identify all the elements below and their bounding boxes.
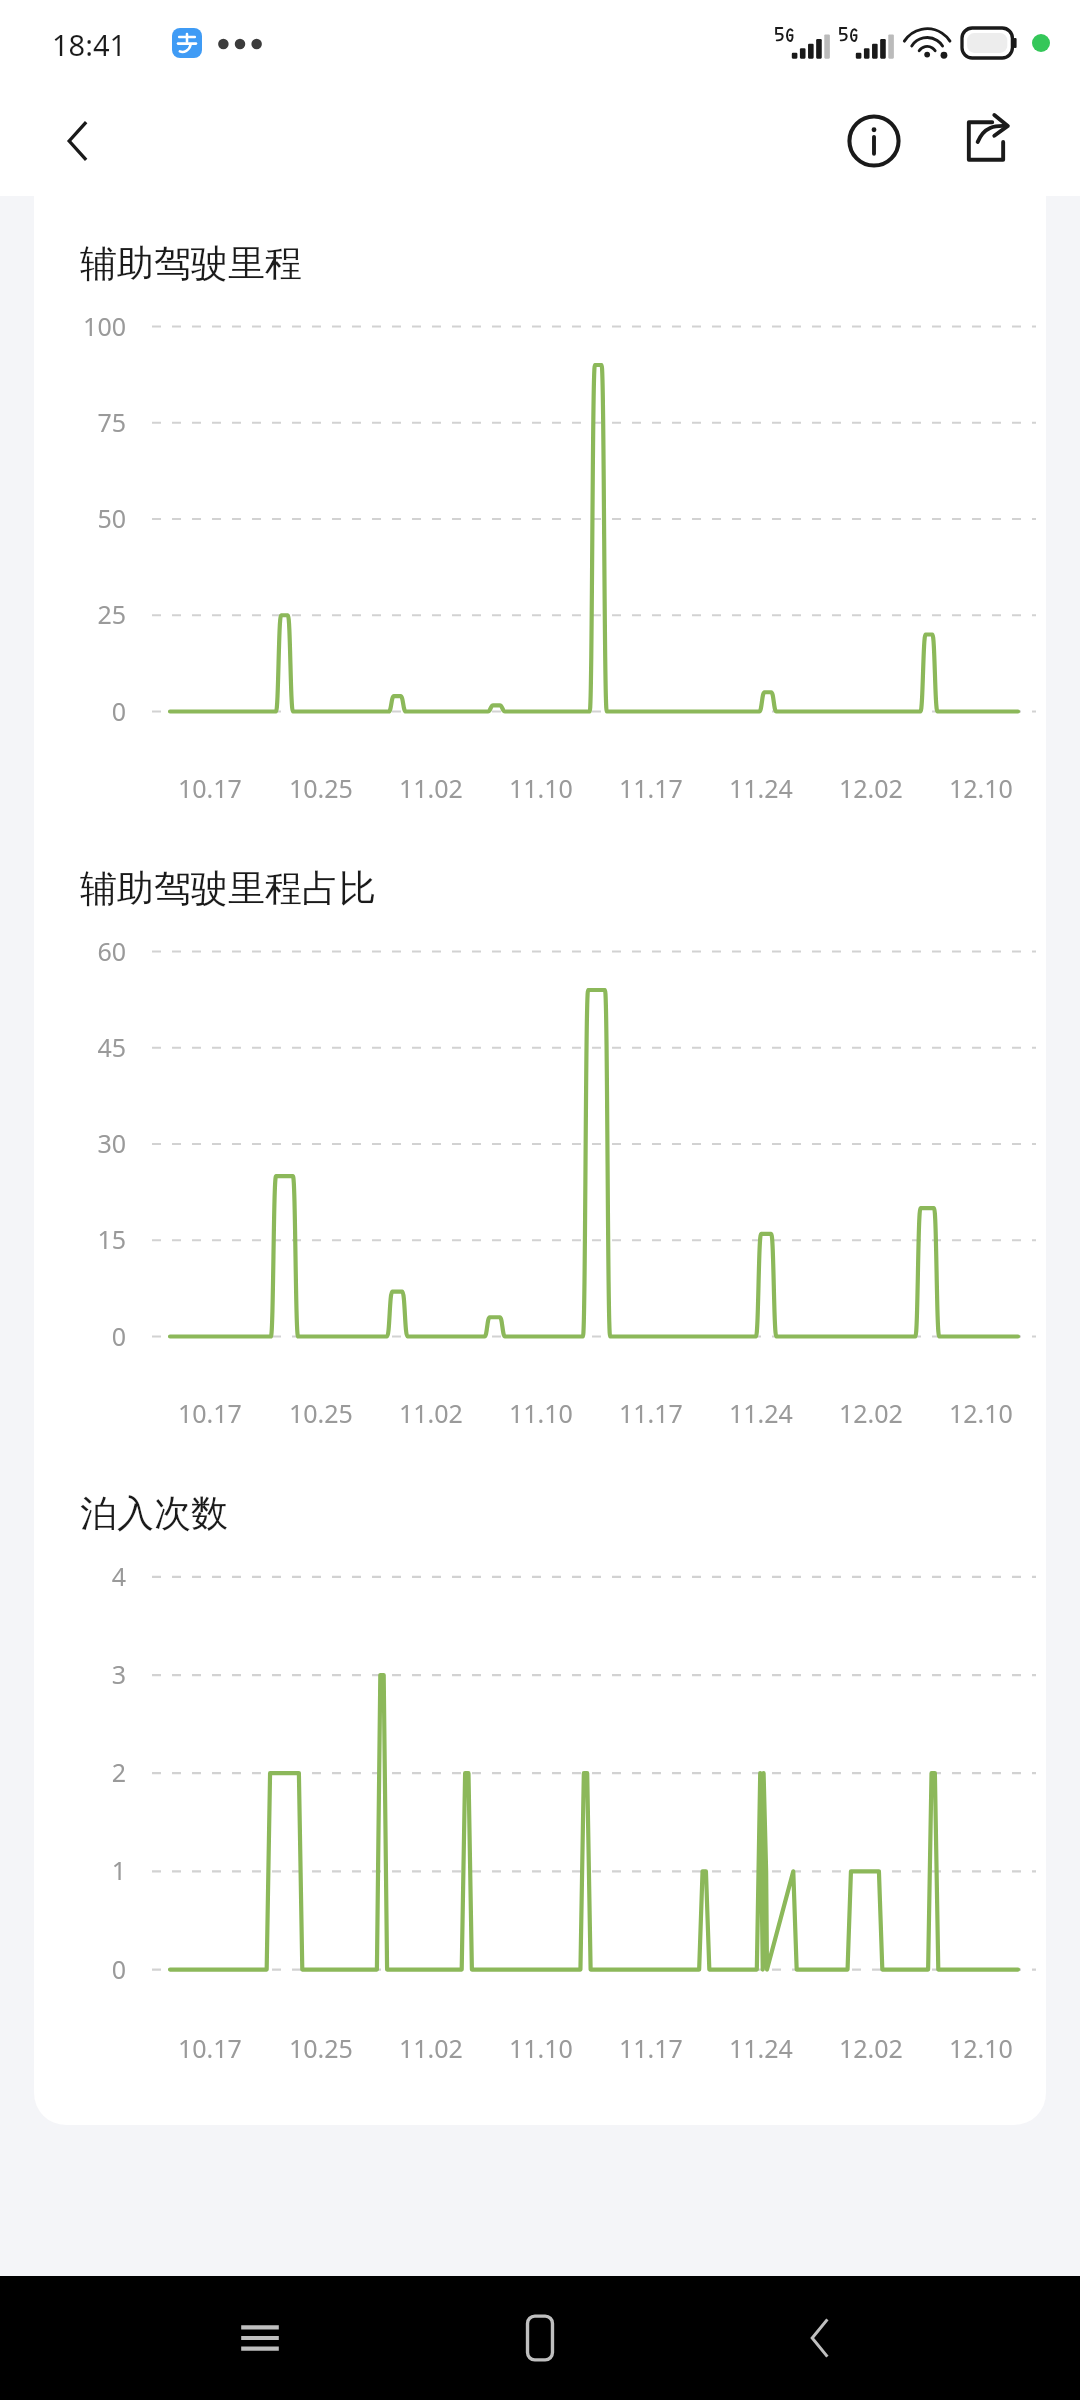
button[interactable]: Recent apps <box>120 2276 400 2400</box>
button[interactable]: Information <box>832 99 916 183</box>
staticText: 辅助驾驶里程占比 <box>80 865 376 912</box>
button[interactable]: Back <box>680 2276 960 2400</box>
staticText: 泊入次数 <box>80 1490 228 1537</box>
staticText: 25 <box>34 597 126 631</box>
staticText: 75 <box>34 405 126 439</box>
staticText: 11.17 <box>619 771 683 805</box>
staticText: 4 <box>34 1559 126 1593</box>
staticText: 12.02 <box>839 2031 903 2065</box>
staticText: 11.02 <box>399 1396 463 1430</box>
staticText: 45 <box>34 1030 126 1064</box>
staticText: 2 <box>34 1755 126 1789</box>
staticText: 100 <box>34 309 126 343</box>
staticText: 15 <box>34 1222 126 1256</box>
staticText: 3 <box>34 1657 126 1691</box>
staticText: 10.25 <box>289 2031 353 2065</box>
button[interactable]: Back <box>36 99 120 183</box>
staticText: 0 <box>34 1952 126 1986</box>
staticText: 11.10 <box>509 771 573 805</box>
staticText: 18:41 <box>52 25 127 64</box>
staticText: 0 <box>34 1319 126 1353</box>
staticText: 11.24 <box>729 1396 793 1430</box>
staticText: 12.10 <box>949 1396 1013 1430</box>
staticText: 11.02 <box>399 771 463 805</box>
staticText: 11.10 <box>509 2031 573 2065</box>
staticText: 12.10 <box>949 2031 1013 2065</box>
staticText: 10.17 <box>178 771 242 805</box>
staticText: 50 <box>34 501 126 535</box>
staticText: 10.17 <box>178 1396 242 1430</box>
staticText: 60 <box>34 934 126 968</box>
staticText: 11.17 <box>619 1396 683 1430</box>
button[interactable]: Share <box>944 99 1028 183</box>
staticText: 1 <box>34 1853 126 1887</box>
staticText: 11.17 <box>619 2031 683 2065</box>
staticText: 辅助驾驶里程 <box>80 240 302 287</box>
staticText: 12.10 <box>949 771 1013 805</box>
staticText: 12.02 <box>839 1396 903 1430</box>
staticText: 11.10 <box>509 1396 573 1430</box>
staticText: 10.25 <box>289 771 353 805</box>
staticText: 30 <box>34 1126 126 1160</box>
staticText: 12.02 <box>839 771 903 805</box>
staticText: 11.24 <box>729 771 793 805</box>
staticText: 0 <box>34 694 126 728</box>
staticText: 10.17 <box>178 2031 242 2065</box>
button[interactable]: Home <box>400 2276 680 2400</box>
staticText: 10.25 <box>289 1396 353 1430</box>
staticText: 11.24 <box>729 2031 793 2065</box>
staticText: 11.02 <box>399 2031 463 2065</box>
